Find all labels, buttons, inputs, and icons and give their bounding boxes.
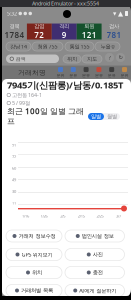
staticText: 1/26 — [41, 213, 48, 219]
staticText: 60 — [12, 165, 16, 171]
staticText: 사진 — [93, 251, 103, 258]
button[interactable]: 누을 0 — [95, 42, 120, 51]
button[interactable]: 위치 — [63, 55, 81, 63]
staticText: 분류 — [120, 73, 128, 78]
button[interactable]: 통일 155 — [65, 42, 94, 51]
staticText: ? — [108, 54, 110, 61]
staticText: 121 — [82, 29, 97, 40]
staticText: 격리 — [59, 23, 69, 29]
staticText: ▾ — [113, 10, 116, 17]
staticText: 분류 — [56, 73, 64, 78]
staticText: 5 / 99절 — [12, 99, 30, 107]
staticText: 거래처 정보수정 — [18, 233, 55, 239]
button[interactable]: Refresh — [116, 53, 125, 62]
staticText: 91 — [12, 142, 16, 148]
button[interactable]: 거래처별 목록 — [6, 284, 62, 296]
staticText: ▲ — [118, 10, 123, 17]
button[interactable]: 사진 — [65, 248, 124, 260]
button[interactable]: 월별 — [104, 113, 120, 120]
button[interactable]: 강남 14 — [6, 42, 31, 51]
staticText: 최근 100일 일별 그래프 — [7, 106, 84, 126]
staticText: 2/25 — [96, 213, 103, 219]
staticText: 청원 755 — [37, 43, 57, 50]
staticText: 지도 — [87, 56, 97, 62]
staticText: 5:32 — [7, 10, 17, 17]
button[interactable]: 청원 755 — [32, 42, 63, 51]
staticText: 감염 — [34, 23, 44, 29]
button[interactable]: 충전 — [65, 266, 124, 278]
staticText: 위치 — [32, 269, 42, 276]
staticText: 3/7 — [116, 213, 121, 219]
staticText: 2/15 — [78, 213, 85, 219]
button[interactable]: 일별 — [88, 113, 104, 120]
staticText: 9 — [62, 29, 67, 40]
button[interactable]: 위치 — [6, 266, 62, 278]
staticText: 분류 — [82, 73, 90, 78]
staticText: Android Emulator - xxx:5554 — [32, 0, 99, 7]
staticText: 통일 155 — [69, 43, 89, 50]
staticText: 거래처별 목록 — [21, 287, 53, 294]
staticText: 49 — [12, 177, 16, 182]
staticText: 1784 — [4, 29, 24, 40]
button[interactable]: 검색 — [6, 54, 59, 63]
button[interactable]: AI에게 질문하기 — [65, 284, 124, 296]
staticText: 분류 — [69, 73, 77, 78]
staticText: 1/16 — [22, 213, 29, 219]
staticText: 7945기(신팜롱)/남동/0.185T — [7, 79, 123, 91]
staticText: 월별 — [107, 113, 117, 120]
button[interactable]: Help — [105, 53, 114, 62]
staticText: 72 — [12, 154, 16, 159]
staticText: 11 — [12, 200, 16, 206]
staticText: 경북 — [9, 23, 19, 29]
staticText: 고천동 164-1 — [12, 91, 42, 99]
button[interactable]: 법인시설 정보 — [65, 230, 124, 242]
staticText: 검색 — [15, 55, 25, 62]
button[interactable]: 지도 — [82, 55, 102, 63]
staticText: 충전 — [93, 269, 103, 276]
staticText: 누을 0 — [100, 43, 114, 50]
staticText: 781 — [106, 29, 121, 40]
staticText: 2/5 — [60, 213, 65, 219]
staticText: 일별 — [91, 113, 101, 120]
staticText: 강남 14 — [10, 43, 27, 50]
staticText: 위치 — [67, 56, 77, 62]
staticText: 거래처명 — [18, 68, 46, 77]
staticText: 법인시설 정보 — [82, 233, 114, 239]
staticText: ↻ — [118, 54, 122, 61]
button[interactable]: GPS 위치보기 — [6, 248, 62, 260]
staticText: AI에게 질문하기 — [79, 287, 116, 294]
staticText: 퇴원 — [84, 23, 94, 29]
staticText: 72 — [34, 29, 44, 40]
button[interactable]: 거래처 정보수정 — [6, 230, 62, 242]
staticText: 30 — [12, 189, 16, 194]
staticText: 분류 — [95, 73, 103, 78]
staticText: 검사 — [109, 23, 119, 29]
staticText: 분류 — [108, 73, 116, 78]
staticText: GPS 위치보기 — [21, 251, 52, 258]
